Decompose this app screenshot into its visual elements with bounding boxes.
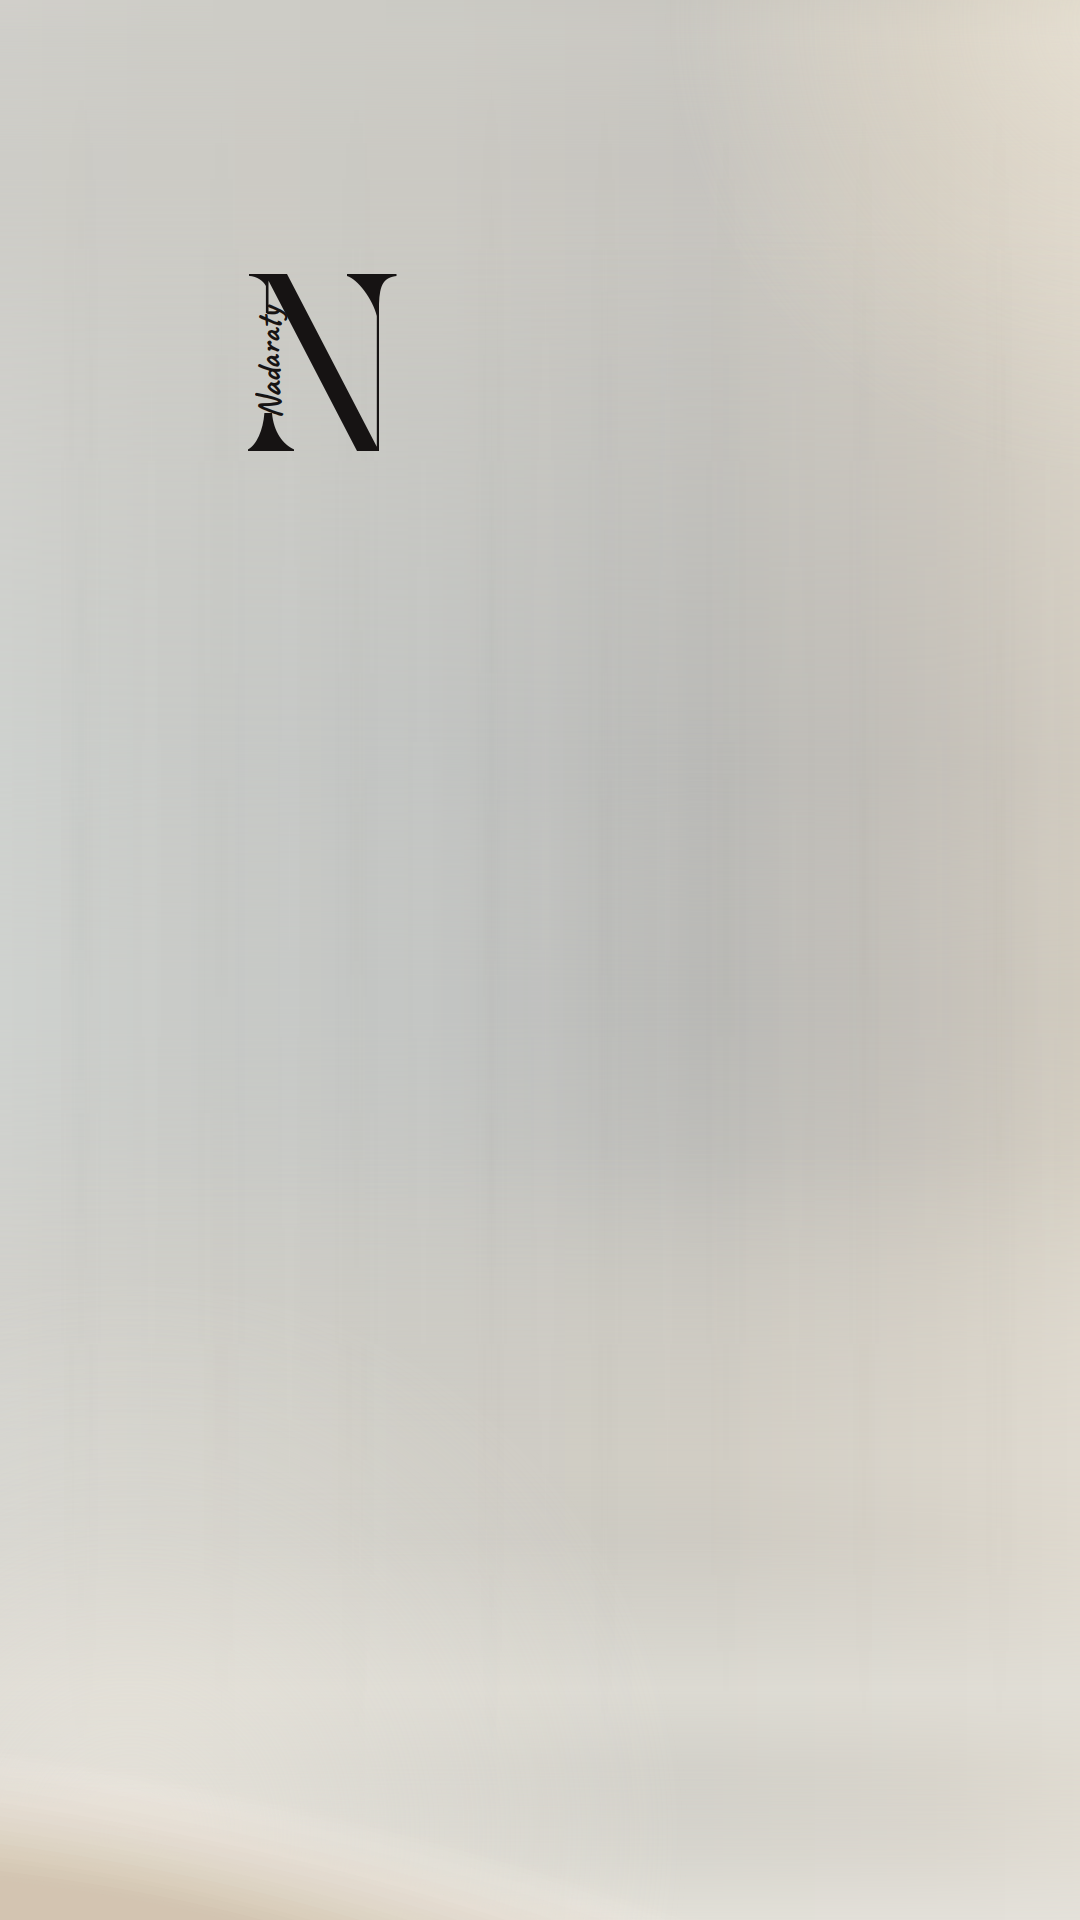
staticText: Nadaraty [213, 342, 324, 384]
